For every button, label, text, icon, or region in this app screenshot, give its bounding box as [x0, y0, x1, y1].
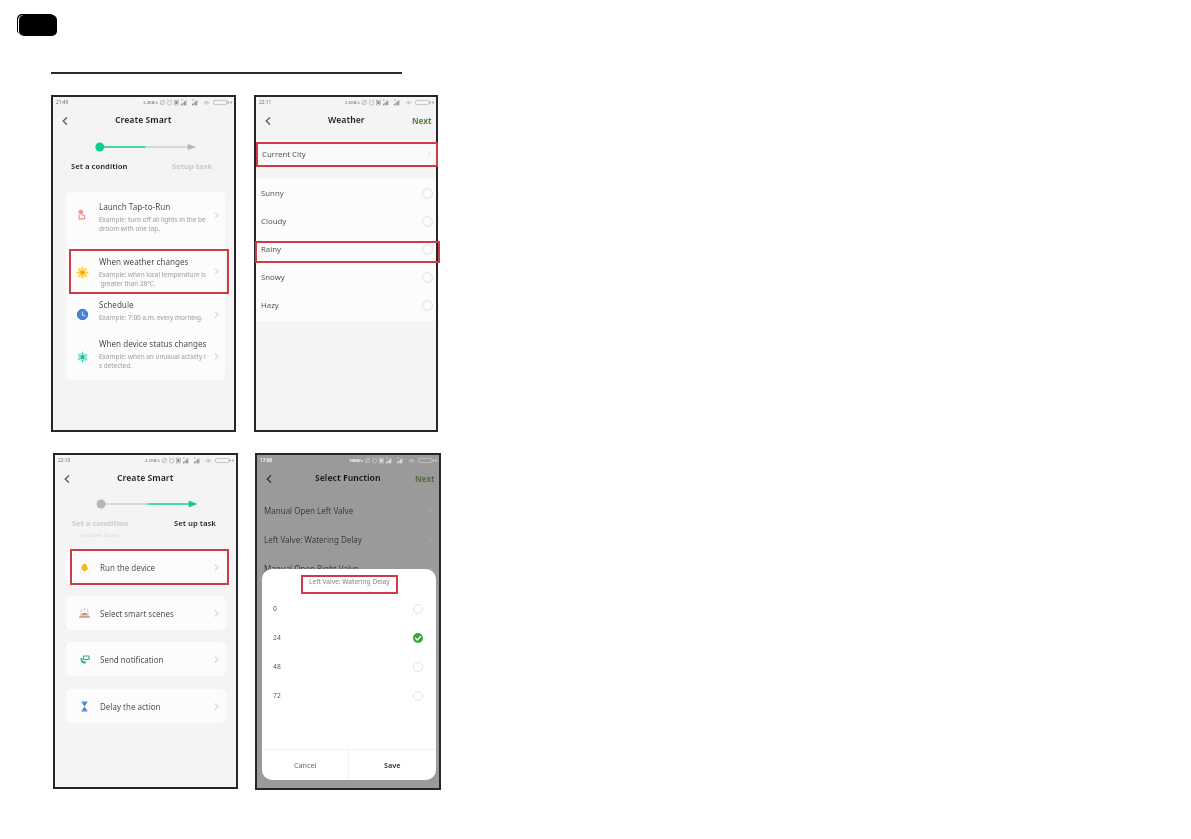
staticText: 22:11	[259, 99, 272, 106]
staticText: Rainy	[261, 244, 282, 255]
staticText: Select smart scenes	[100, 608, 174, 619]
staticText: Send notification	[100, 654, 164, 665]
staticText: When device status changes	[99, 338, 207, 349]
button[interactable]	[66, 196, 225, 242]
button[interactable]: 72	[262, 681, 436, 710]
staticText: 2.6KB/s	[345, 100, 360, 106]
button[interactable]	[66, 250, 225, 296]
staticText: 22:10	[58, 457, 71, 464]
button[interactable]	[66, 294, 225, 332]
staticText: Save	[384, 760, 401, 770]
staticText: Create Smart	[115, 114, 172, 126]
staticText: Weather	[328, 114, 365, 126]
staticText: 21:49	[56, 99, 69, 106]
button[interactable]: Manual Open Right Valve	[256, 554, 440, 583]
button[interactable]: Cancel	[262, 750, 348, 780]
staticText: Run the device	[100, 562, 156, 573]
staticText: 24	[273, 633, 281, 642]
button[interactable]: Left Valve: Watering Delay	[256, 525, 440, 554]
staticText: Launch Tap-to-Run	[99, 201, 171, 212]
staticText: Cloudy	[261, 216, 287, 227]
staticText: Create Smart	[117, 472, 174, 484]
staticText: Set a condition	[71, 161, 128, 171]
button[interactable]: Select smart scenes	[66, 596, 226, 630]
staticText: Current City	[262, 149, 306, 160]
button[interactable]: 48	[262, 652, 436, 681]
staticText: Select Function	[315, 472, 381, 484]
staticText: Snowy	[261, 272, 285, 283]
staticText: Example: when an unusual activity i s de…	[99, 352, 206, 369]
staticText: 72	[273, 691, 281, 700]
button[interactable]: Sunny	[255, 179, 437, 207]
button[interactable]: Next	[415, 473, 435, 484]
staticText: weather fuoes	[81, 531, 119, 539]
button[interactable]: Send notification	[66, 642, 226, 676]
staticText: Set a condition	[72, 518, 129, 528]
staticText: 0	[273, 604, 277, 613]
button[interactable]: Back	[261, 471, 276, 486]
button[interactable]: Current City	[255, 141, 437, 167]
staticText: 18KB/s	[349, 458, 363, 464]
staticText: Hazy	[261, 300, 279, 311]
button[interactable]: Back	[260, 113, 275, 128]
staticText: 48	[273, 662, 281, 671]
button[interactable]: Hazy	[255, 291, 437, 319]
staticText: When weather changes	[99, 256, 189, 267]
staticText: 4.2KB/s	[145, 458, 160, 464]
staticText: Manual Open Left Valve	[264, 505, 354, 516]
staticText: Left Valve: Watering Delay	[309, 577, 390, 586]
button[interactable]: Rainy	[255, 235, 437, 263]
staticText: Example: turn off all lights in the be d…	[99, 215, 206, 232]
button[interactable]: 24	[262, 623, 436, 652]
staticText: Set up task	[174, 518, 217, 528]
staticText: Sunny	[261, 188, 284, 199]
staticText: Schedule	[99, 299, 134, 310]
button[interactable]	[66, 333, 225, 379]
staticText: Next	[412, 115, 432, 126]
button[interactable]: Back	[57, 113, 72, 128]
staticText: Example: 7:00 a.m. every morning.	[99, 313, 203, 322]
staticText: Next	[415, 473, 435, 484]
staticText: Cancel	[294, 760, 317, 770]
staticText: Example: when local temperature is great…	[99, 270, 206, 287]
staticText: Delay the action	[100, 701, 161, 712]
staticText: Manual Open Right Valve	[264, 563, 359, 574]
button[interactable]: Save	[349, 750, 436, 780]
staticText: Setup task	[172, 161, 213, 171]
staticText: 17:06	[260, 457, 273, 464]
button[interactable]: Snowy	[255, 263, 437, 291]
staticText: Left Valve: Watering Delay	[264, 534, 362, 545]
button[interactable]: 0	[262, 594, 436, 623]
button[interactable]: Cloudy	[255, 207, 437, 235]
staticText: 3.4KB/s	[143, 100, 158, 106]
button[interactable]: Back	[59, 471, 74, 486]
button[interactable]: Manual Open Left Valve	[256, 496, 440, 525]
button[interactable]: Next	[412, 115, 432, 126]
button[interactable]: Run the device	[66, 550, 226, 584]
button[interactable]: Delay the action	[66, 689, 226, 723]
